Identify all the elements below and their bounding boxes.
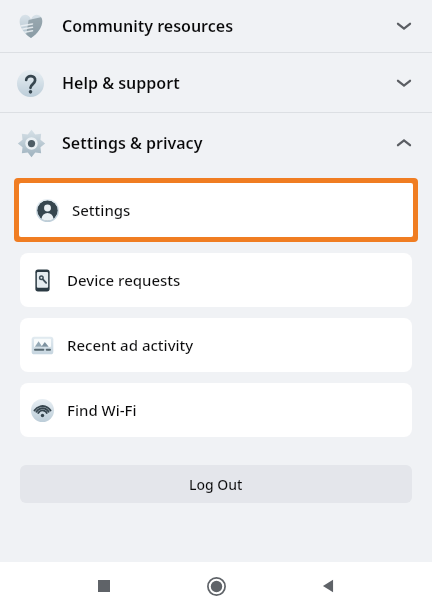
button[interactable]: Device requests <box>20 253 412 307</box>
staticText: Find Wi-Fi <box>67 400 137 420</box>
button[interactable]: Back <box>307 565 349 607</box>
staticText: Recent ad activity <box>67 335 194 355</box>
staticText: Settings & privacy <box>62 132 203 154</box>
staticText: Help & support <box>62 72 180 94</box>
staticText: Settings <box>72 200 131 220</box>
button[interactable]: Community resources <box>0 0 432 52</box>
button[interactable]: Log Out <box>20 465 412 503</box>
button[interactable]: Recent ad activity <box>20 318 412 372</box>
button[interactable]: Recent apps <box>83 565 125 607</box>
button[interactable]: Home <box>195 565 237 607</box>
staticText: Log Out <box>189 475 243 494</box>
button[interactable]: Help & support <box>0 53 432 112</box>
staticText: Device requests <box>67 270 181 290</box>
button[interactable]: Find Wi-Fi <box>20 383 412 437</box>
button[interactable]: Settings <box>19 183 413 237</box>
button[interactable]: Settings & privacy <box>0 113 432 172</box>
staticText: Community resources <box>62 15 234 37</box>
